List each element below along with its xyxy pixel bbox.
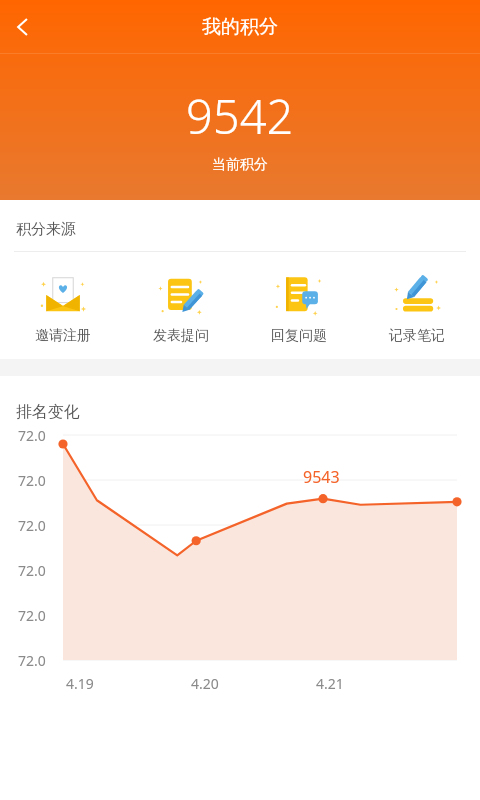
button[interactable]: 回复问题 bbox=[244, 266, 354, 347]
staticText: 4.21 bbox=[316, 674, 344, 693]
staticText: 积分来源 bbox=[16, 220, 76, 239]
button[interactable]: 发表提问 bbox=[126, 266, 236, 347]
staticText: 当前积分 bbox=[212, 156, 268, 174]
staticText: 邀请注册 bbox=[35, 327, 91, 345]
staticText: 排名变化 bbox=[16, 402, 80, 422]
button[interactable]: 邀请注册 bbox=[8, 266, 118, 347]
button[interactable]: 记录笔记 bbox=[362, 266, 472, 347]
staticText: 4.20 bbox=[191, 674, 219, 693]
staticText: 9543 bbox=[303, 466, 340, 488]
staticText: 72.0 bbox=[18, 561, 46, 580]
staticText: 4.19 bbox=[66, 674, 94, 693]
staticText: 72.0 bbox=[18, 426, 46, 445]
staticText: 72.0 bbox=[18, 606, 46, 625]
staticText: 72.0 bbox=[18, 651, 46, 670]
staticText: 发表提问 bbox=[153, 327, 209, 345]
staticText: 9542 bbox=[186, 84, 294, 148]
staticText: 72.0 bbox=[18, 516, 46, 535]
staticText: 记录笔记 bbox=[389, 327, 445, 345]
staticText: 我的积分 bbox=[202, 15, 278, 39]
staticText: 回复问题 bbox=[271, 327, 327, 345]
button[interactable]: Back bbox=[0, 4, 46, 50]
staticText: 72.0 bbox=[18, 471, 46, 490]
